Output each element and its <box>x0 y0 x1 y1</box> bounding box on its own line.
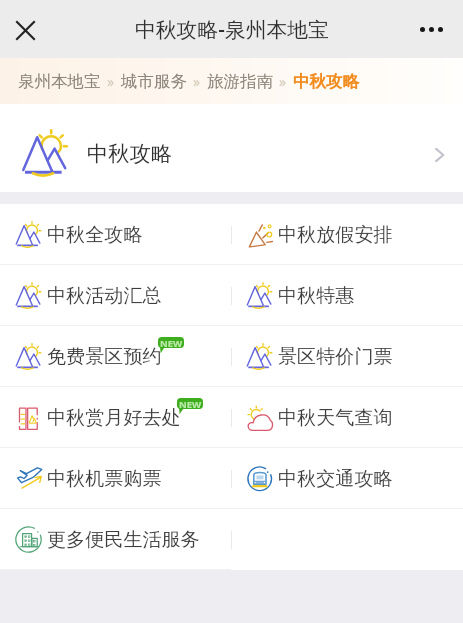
button[interactable]: More options <box>409 7 453 51</box>
staticText: 中秋攻略 <box>87 140 173 167</box>
staticText: NEW <box>160 337 183 350</box>
button[interactable]: 中秋交通攻略 <box>231 448 463 509</box>
staticText: 中秋活动汇总 <box>47 284 162 308</box>
staticText: » <box>279 72 287 91</box>
button[interactable]: 中秋特惠 <box>231 265 463 326</box>
staticText: 中秋攻略-泉州本地宝 <box>135 15 329 43</box>
button[interactable]: 中秋攻略 <box>0 104 463 192</box>
button[interactable]: Close <box>3 8 47 52</box>
button[interactable]: 泉州本地宝 <box>18 71 101 92</box>
button[interactable]: 中秋放假安排 <box>231 204 463 265</box>
staticText: 中秋放假安排 <box>278 223 393 247</box>
staticText: NEW <box>179 398 202 411</box>
staticText: 中秋特惠 <box>278 284 355 308</box>
button[interactable]: 中秋天气查询 <box>231 387 463 448</box>
button[interactable]: 中秋赏月好去处 <box>0 387 231 448</box>
other: Open <box>435 148 444 162</box>
staticText: 中秋交通攻略 <box>278 467 393 491</box>
staticText: 中秋全攻略 <box>47 223 143 247</box>
button[interactable]: 免费景区预约 <box>0 326 231 387</box>
staticText: » <box>107 72 115 91</box>
button[interactable]: 中秋机票购票 <box>0 448 231 509</box>
button[interactable]: 中秋全攻略 <box>0 204 231 265</box>
staticText: 景区特价门票 <box>278 345 393 369</box>
staticText: 更多便民生活服务 <box>47 528 200 552</box>
button[interactable]: 中秋攻略 <box>293 71 359 92</box>
staticText: 免费景区预约 <box>47 345 162 369</box>
staticText: » <box>193 72 201 91</box>
staticText: 中秋天气查询 <box>278 406 393 430</box>
staticText: 中秋机票购票 <box>47 467 162 491</box>
button[interactable]: 景区特价门票 <box>231 326 463 387</box>
button[interactable]: 更多便民生活服务 <box>0 509 231 570</box>
button[interactable]: 中秋活动汇总 <box>0 265 231 326</box>
staticText: 中秋赏月好去处 <box>47 406 181 430</box>
button[interactable]: 旅游指南 <box>207 71 273 92</box>
button[interactable]: 城市服务 <box>121 71 187 92</box>
